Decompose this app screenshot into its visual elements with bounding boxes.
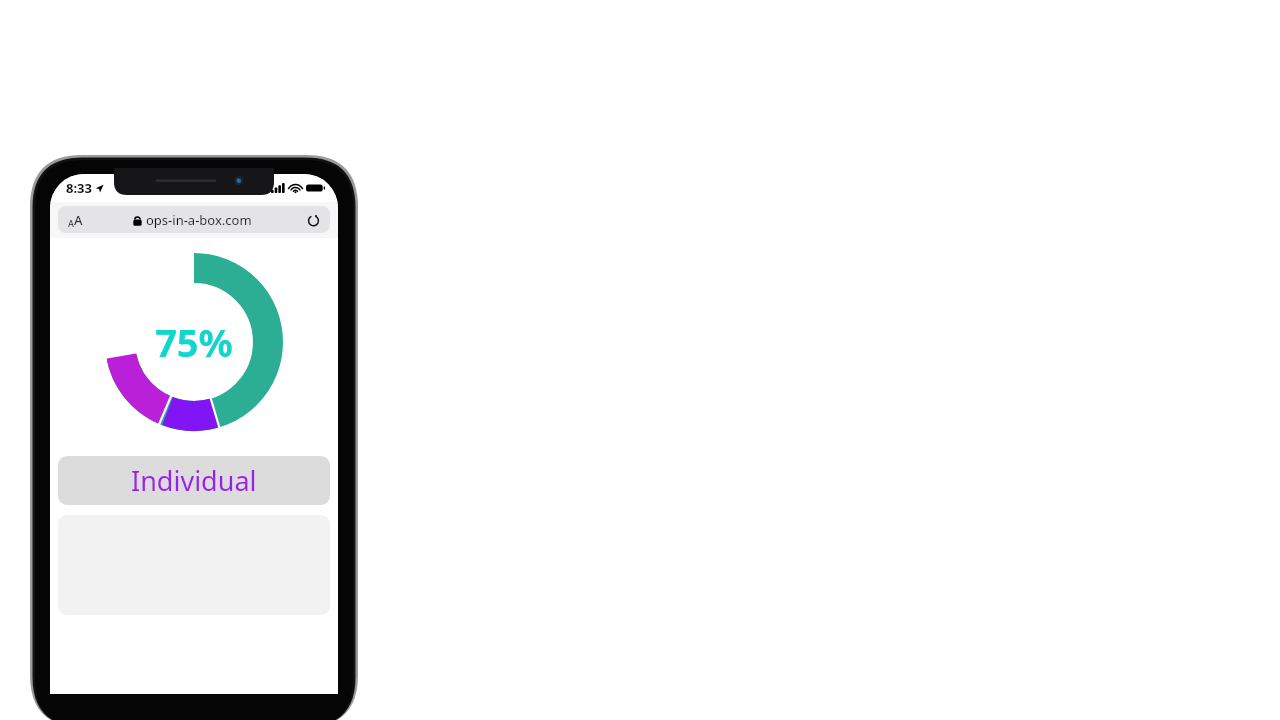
staticText: A: [74, 211, 83, 229]
staticText: 75%: [155, 316, 233, 368]
staticText: 8:33: [66, 179, 92, 197]
button[interactable]: Individual: [58, 456, 330, 505]
button[interactable]: Reload: [304, 211, 322, 229]
staticText: Individual: [131, 462, 257, 499]
button[interactable]: Text size: [58, 206, 330, 233]
staticText: ops-in-a-box.com: [146, 211, 252, 229]
button[interactable]: Text size: [68, 211, 83, 229]
staticText: A: [68, 217, 74, 229]
